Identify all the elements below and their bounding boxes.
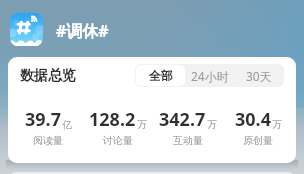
staticText: 亿	[62, 118, 72, 131]
staticText: 原创量	[243, 134, 273, 147]
button[interactable]: 128.2	[83, 107, 153, 147]
staticText: 30.4	[235, 107, 271, 132]
staticText: 互动量	[173, 134, 203, 147]
button[interactable]: 30天	[234, 65, 283, 86]
staticText: 万	[207, 118, 217, 131]
staticText: 万	[137, 118, 147, 131]
button[interactable]: 24小时	[185, 65, 234, 86]
staticText: 39.7	[25, 107, 61, 132]
button[interactable]: 30.4	[223, 107, 293, 147]
staticText: 全部	[149, 68, 173, 83]
staticText: 24小时	[191, 68, 229, 84]
staticText: 128.2	[89, 107, 136, 132]
button[interactable]: 39.7	[13, 107, 83, 147]
staticText: 30天	[246, 68, 272, 84]
staticText: 数据总览	[20, 67, 76, 85]
staticText: 万	[272, 118, 282, 131]
staticText: #调休#	[56, 20, 109, 42]
button[interactable]: 全部	[136, 65, 185, 86]
button[interactable]: 342.7	[153, 107, 223, 147]
staticText: 阅读量	[33, 134, 63, 147]
staticText: 讨论量	[103, 134, 133, 147]
staticText: 342.7	[159, 107, 206, 132]
button[interactable]: 话题图标	[10, 13, 43, 46]
